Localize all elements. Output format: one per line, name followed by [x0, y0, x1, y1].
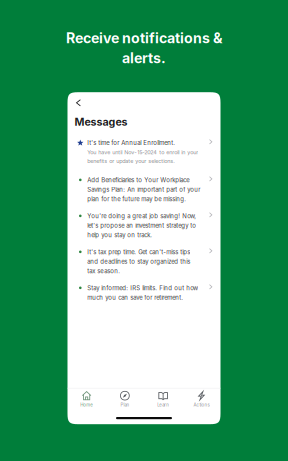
- button[interactable]: Back: [67, 95, 87, 109]
- staticText: Savings Plan: An important part of your: [87, 186, 200, 193]
- staticText: Plan: [120, 402, 129, 407]
- staticText: Receive notifications &: [66, 29, 222, 47]
- button[interactable]: It's tax prep time. Get can't-miss tips: [67, 248, 220, 275]
- staticText: and deadlines to stay organized this: [87, 258, 190, 265]
- button[interactable]: Add Beneficiaries to Your Workplace: [67, 176, 220, 203]
- staticText: Messages: [74, 115, 127, 128]
- staticText: It's tax prep time. Get can't-miss tips: [87, 248, 190, 256]
- button[interactable]: You're doing a great job saving! Now,: [67, 212, 220, 239]
- staticText: You're doing a great job saving! Now,: [87, 212, 196, 220]
- staticText: Actions: [193, 402, 209, 407]
- staticText: Stay informed: IRS limits. Find out how: [87, 284, 198, 292]
- staticText: let's propose an investment strategy to: [87, 222, 196, 229]
- staticText: benefits or update your selections.: [87, 158, 175, 164]
- button[interactable]: Actions: [182, 391, 220, 407]
- staticText: plan for the future may be missing.: [87, 195, 186, 203]
- staticText: It's time for Annual Enrollment.: [87, 139, 175, 147]
- staticText: much you can save for retirement.: [87, 294, 183, 301]
- staticText: tax season.: [87, 267, 120, 275]
- staticText: Home: [80, 402, 93, 407]
- button[interactable]: Learn: [144, 391, 182, 407]
- button[interactable]: Plan: [106, 391, 144, 407]
- button[interactable]: Home: [67, 391, 106, 407]
- staticText: help you stay on track.: [87, 231, 152, 239]
- button[interactable]: Stay informed: IRS limits. Find out how: [67, 284, 220, 301]
- staticText: alerts.: [122, 50, 166, 67]
- staticText: Learn: [157, 402, 169, 407]
- staticText: You have until Nov-15-2024 to enroll in …: [87, 149, 198, 155]
- staticText: Add Beneficiaries to Your Workplace: [87, 176, 189, 184]
- button[interactable]: It's time for Annual Enrollment.: [67, 139, 220, 164]
